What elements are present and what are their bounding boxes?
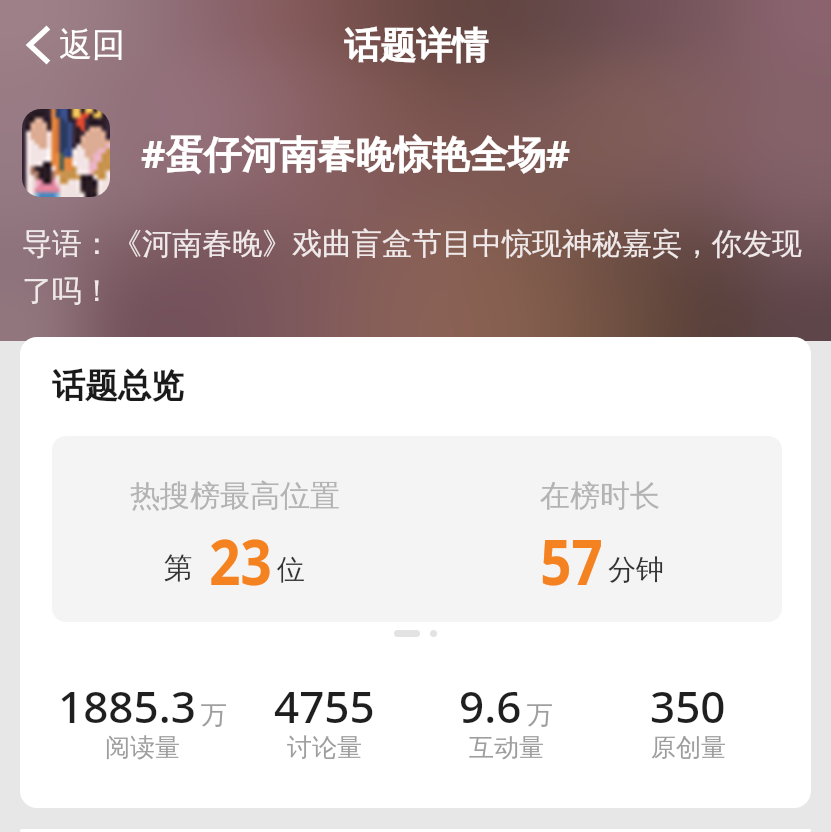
staticText: 57 [540,519,603,603]
staticText: 热搜榜最高位置 [130,477,340,515]
staticText: 9.6 [459,676,522,736]
staticText: 互动量 [469,732,544,763]
button[interactable]: 热搜榜最高位置 [52,436,417,622]
button[interactable]: Back [19,14,133,76]
staticText: 1885.3 [58,676,196,736]
button[interactable]: 在榜时长 [417,436,782,622]
staticText: 23 [209,519,272,603]
staticText: 350 [650,676,726,736]
button[interactable]: 4755 [233,676,415,767]
staticText: #蛋仔河南春晚惊艳全场# [141,127,571,179]
staticText: 万 [201,699,227,732]
staticText: 话题总览 [52,365,184,407]
staticText: 万 [527,699,553,732]
staticText: 分钟 [608,552,664,587]
staticText: 讨论量 [287,732,362,763]
button[interactable]: 350 [597,676,779,767]
staticText: 返回 [59,24,125,66]
button[interactable]: 1885.3 [52,676,233,767]
staticText: 话题详情 [344,23,488,68]
staticText: 导语：《河南春晚》戏曲盲盒节目中惊现神秘嘉宾，你发现了吗！ [22,225,815,310]
staticText: 原创量 [651,732,726,763]
staticText: 4755 [274,676,375,736]
staticText: 阅读量 [105,732,180,763]
staticText: 位 [277,552,305,587]
staticText: 第 [164,550,193,587]
staticText: 在榜时长 [540,477,660,515]
button[interactable]: 9.6 [415,676,597,767]
